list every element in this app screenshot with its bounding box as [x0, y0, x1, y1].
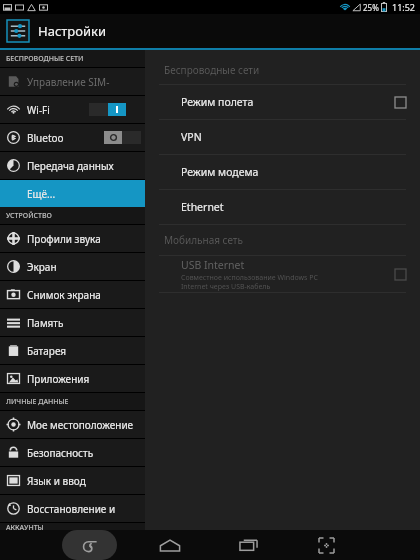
button[interactable]: Безопасность — [0, 439, 145, 466]
button[interactable]: Off — [104, 131, 141, 144]
button[interactable]: Передача данных — [0, 152, 145, 179]
staticText: Батарея — [27, 344, 67, 358]
button[interactable]: Ещё... — [0, 180, 145, 207]
staticText: Снимок экрана — [27, 288, 101, 302]
staticText: Профили звука — [27, 232, 101, 246]
staticText: Экран — [27, 260, 57, 274]
staticText: Wi-Fi — [27, 103, 50, 117]
button[interactable]: Восстановление и сброс — [0, 495, 145, 522]
staticText: Настройки — [38, 22, 107, 40]
button[interactable]: Экран — [0, 253, 145, 280]
staticText: VPN — [181, 130, 202, 144]
staticText: Безопасность — [27, 446, 94, 460]
button[interactable]: Режим полета — [145, 85, 420, 119]
button[interactable]: On — [89, 103, 126, 116]
other: USB Internet checkbox — [395, 269, 406, 280]
other: Settings — [6, 19, 30, 43]
button[interactable]: VPN — [145, 120, 420, 154]
staticText: Мобильная сеть — [164, 233, 243, 247]
button[interactable]: Режим модема — [145, 155, 420, 189]
button[interactable]: Home — [147, 530, 193, 560]
staticText: Ethernet — [181, 200, 224, 214]
button[interactable]: USB Internet — [145, 256, 420, 292]
button[interactable]: Мое местоположение — [0, 411, 145, 438]
staticText: Приложения — [27, 372, 90, 386]
staticText: Память — [27, 316, 64, 330]
staticText: Режим полета — [181, 95, 254, 109]
staticText: ЛИЧНЫЕ ДАННЫЕ — [6, 397, 69, 407]
staticText: Мое местоположение — [27, 418, 134, 432]
staticText: USB Internet — [181, 258, 245, 272]
button[interactable]: Ethernet — [145, 190, 420, 224]
staticText: Передача данных — [27, 159, 114, 173]
staticText: 25% — [363, 2, 379, 13]
button[interactable]: Язык и ввод — [0, 467, 145, 494]
staticText: Bluetooth — [27, 131, 65, 145]
button[interactable]: Back — [62, 530, 117, 560]
button[interactable]: Батарея — [0, 337, 145, 364]
staticText: Язык и ввод — [27, 474, 86, 488]
button[interactable]: Recent apps — [225, 530, 271, 560]
button[interactable]: Управление SIM-картами — [0, 68, 145, 95]
staticText: Режим модема — [181, 165, 259, 179]
staticText: УСТРОЙСТВО — [6, 211, 52, 221]
button[interactable]: Settings — [0, 14, 420, 48]
staticText: Совместное использование Windows PC Inte… — [181, 273, 318, 291]
button[interactable]: Wi-Fi — [0, 96, 145, 123]
button[interactable]: Bluetooth — [0, 124, 145, 151]
button[interactable]: Профили звука — [0, 225, 145, 252]
staticText: БЕСПРОВОДНЫЕ СЕТИ — [6, 54, 84, 64]
button[interactable]: Screenshot — [303, 530, 349, 560]
staticText: Ещё... — [27, 187, 56, 201]
staticText: Беспроводные сети — [164, 63, 260, 77]
other: Режим полета checkbox — [395, 97, 406, 108]
staticText: 11:52 — [392, 1, 416, 13]
button[interactable]: Снимок экрана — [0, 281, 145, 308]
staticText: Восстановление и сброс — [27, 502, 141, 516]
button[interactable]: Память — [0, 309, 145, 336]
button[interactable]: Приложения — [0, 365, 145, 392]
staticText: АККАУНТЫ — [6, 523, 44, 530]
staticText: Управление SIM-картами — [27, 75, 141, 89]
